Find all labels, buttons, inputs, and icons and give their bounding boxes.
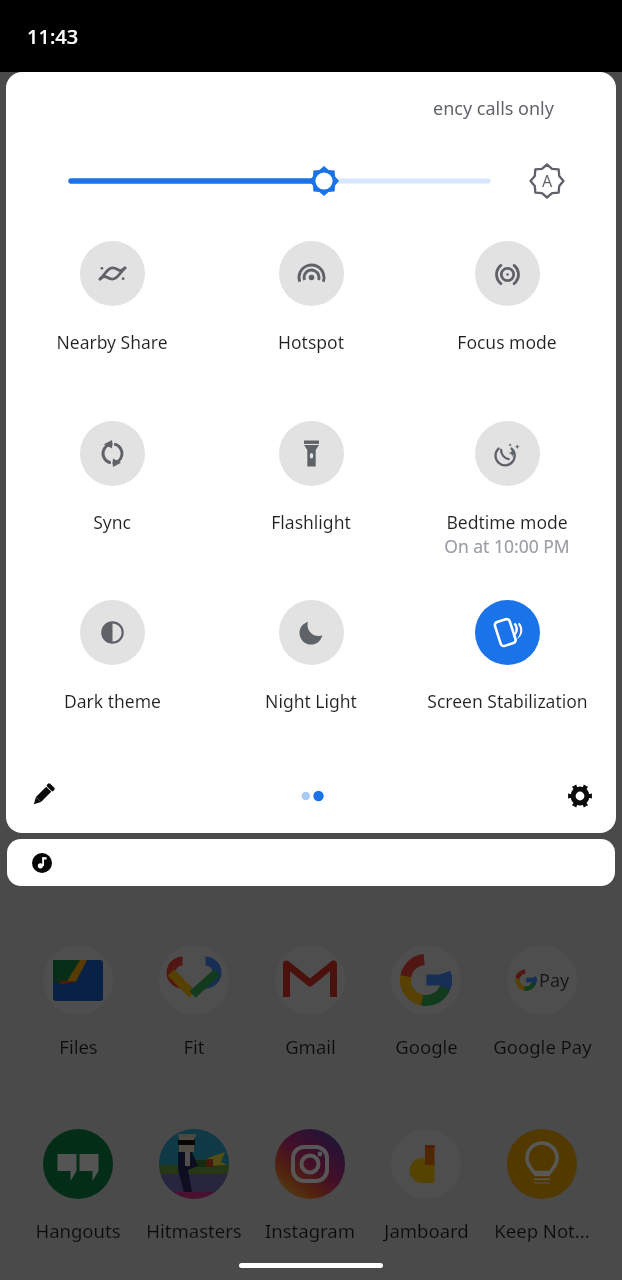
button[interactable]: Hitmasters: [137, 1129, 251, 1243]
button[interactable]: Gmail: [253, 945, 367, 1059]
button[interactable]: Nearby Share: [17, 241, 207, 354]
button[interactable]: Google: [369, 945, 483, 1059]
button[interactable]: Edit: [20, 774, 64, 818]
button[interactable]: [7, 839, 615, 886]
button[interactable]: Sync: [17, 421, 207, 534]
staticText: Hotspot: [278, 330, 344, 354]
staticText: Files: [59, 1034, 98, 1059]
button[interactable]: Flashlight: [216, 421, 406, 534]
staticText: Jamboard: [384, 1218, 469, 1243]
staticText: Night Light: [265, 689, 357, 713]
staticText: Google: [395, 1034, 458, 1059]
button[interactable]: Dark theme: [17, 600, 207, 713]
staticText: Focus mode: [457, 330, 557, 354]
staticText: Hangouts: [35, 1218, 121, 1243]
staticText: Bedtime mode: [446, 510, 568, 534]
staticText: Pay: [539, 968, 570, 993]
button[interactable]: Hangouts: [21, 1129, 135, 1243]
button[interactable]: Settings: [558, 774, 602, 818]
button[interactable]: Jamboard: [369, 1129, 483, 1243]
staticText: On at 10:00 PM: [444, 534, 570, 558]
button[interactable]: Auto brightness: [525, 159, 569, 203]
button[interactable]: Fit: [137, 945, 251, 1059]
button[interactable]: Instagram: [253, 1129, 367, 1243]
staticText: Keep Not...: [494, 1218, 590, 1243]
button[interactable]: Night Light: [216, 600, 406, 713]
button[interactable]: Pay: [485, 945, 599, 1059]
button[interactable]: Screen Stabilization: [412, 600, 602, 713]
staticText: Flashlight: [271, 510, 351, 534]
button[interactable]: Focus mode: [412, 241, 602, 354]
staticText: Gmail: [285, 1034, 336, 1059]
staticText: Hitmasters: [146, 1218, 242, 1243]
staticText: ency calls only: [433, 96, 554, 121]
staticText: A: [542, 170, 553, 192]
staticText: Nearby Share: [56, 330, 168, 354]
button[interactable]: Hotspot: [216, 241, 406, 354]
staticText: 11:43: [27, 23, 79, 50]
staticText: Screen Stabilization: [427, 689, 588, 713]
button[interactable]: Brightness: [61, 159, 498, 203]
staticText: Sync: [93, 510, 131, 534]
button[interactable]: Files: [21, 945, 135, 1059]
staticText: Instagram: [265, 1218, 355, 1243]
staticText: Google Pay: [493, 1034, 592, 1059]
button[interactable]: Keep Not...: [485, 1129, 599, 1243]
staticText: Fit: [183, 1034, 205, 1059]
button[interactable]: Bedtime mode: [412, 421, 602, 558]
staticText: Dark theme: [64, 689, 161, 713]
